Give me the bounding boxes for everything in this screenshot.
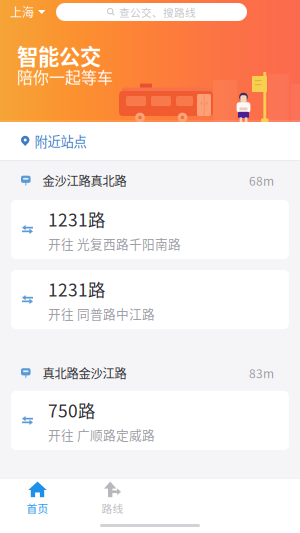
staticText: 首页 bbox=[26, 500, 48, 516]
staticText: 智能公交 bbox=[17, 40, 101, 71]
button[interactable]: 上海 bbox=[0, 3, 45, 21]
button[interactable]: 查公交、搜路线 bbox=[56, 3, 247, 21]
staticText: 1231路 bbox=[48, 276, 105, 301]
staticText: 附近站点 bbox=[34, 131, 86, 151]
staticText: 开往 光复西路千阳南路 bbox=[48, 234, 181, 253]
staticText: 陪你一起等车 bbox=[17, 65, 113, 88]
staticText: 真北路金沙江路 bbox=[43, 364, 127, 382]
staticText: 查公交、搜路线 bbox=[119, 4, 196, 20]
staticText: 开往 同普路中江路 bbox=[48, 304, 155, 323]
staticText: 路线 bbox=[101, 500, 123, 516]
staticText: 上海 bbox=[10, 3, 34, 21]
button[interactable]: 750路 bbox=[0, 391, 300, 450]
button[interactable]: 1231路 bbox=[0, 200, 300, 259]
button[interactable]: 金沙江路真北路 bbox=[0, 165, 300, 195]
button[interactable]: 1231路 bbox=[0, 270, 300, 329]
button[interactable]: 首页 bbox=[0, 480, 75, 518]
staticText: 83m bbox=[249, 364, 274, 382]
staticText: 开往 广顺路定威路 bbox=[48, 425, 155, 444]
button[interactable]: 真北路金沙江路 bbox=[0, 358, 300, 388]
staticText: 1231路 bbox=[48, 206, 105, 231]
staticText: 68m bbox=[249, 172, 274, 189]
staticText: 金沙江路真北路 bbox=[43, 172, 127, 189]
staticText: 750路 bbox=[48, 397, 95, 422]
button[interactable]: 路线 bbox=[75, 480, 150, 518]
